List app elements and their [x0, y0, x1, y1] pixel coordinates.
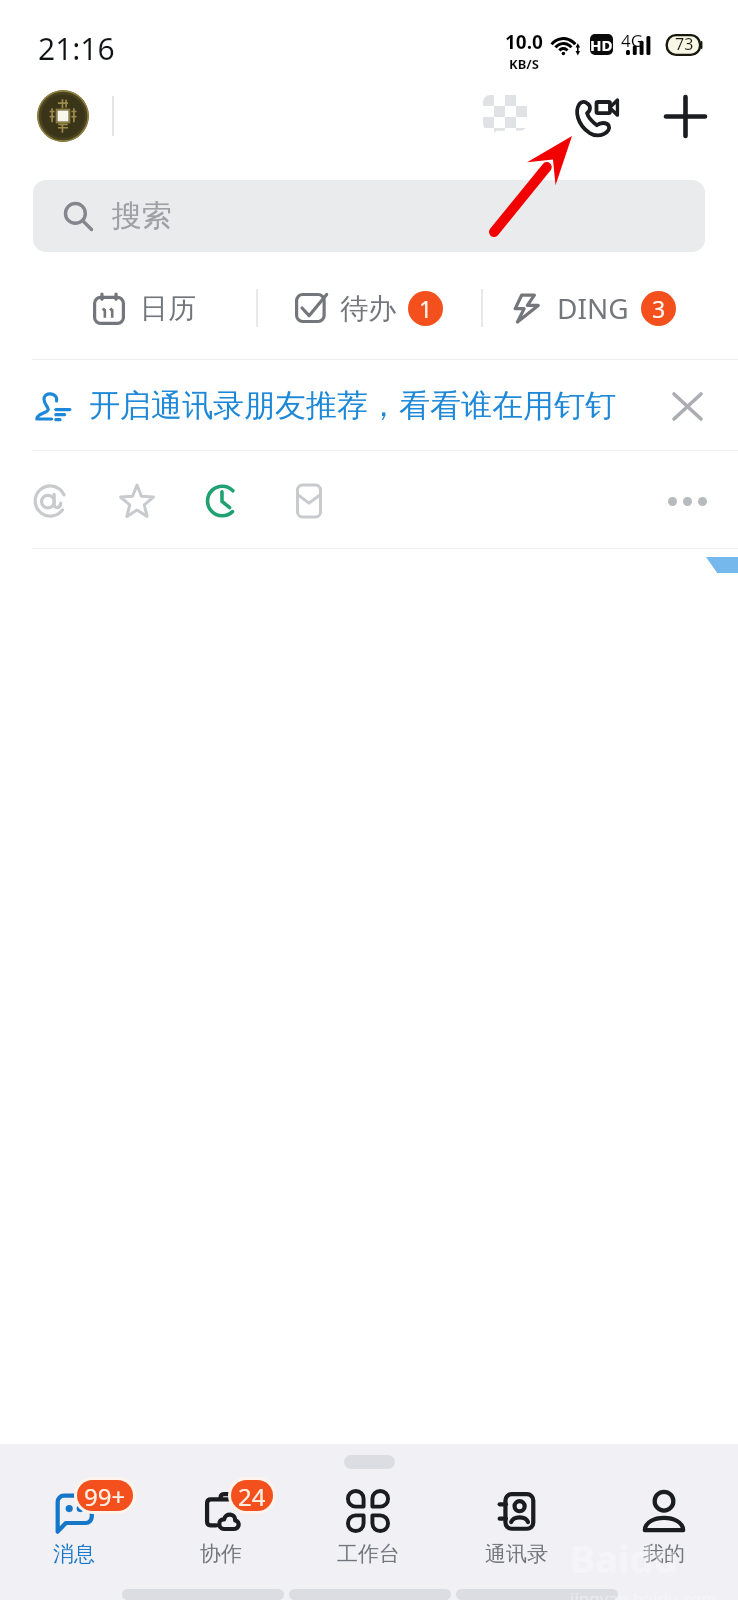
button[interactable]: 日历 — [32, 262, 256, 354]
staticText: 24 — [238, 1480, 266, 1511]
button[interactable]: 待办 — [258, 262, 480, 354]
staticText: 开启通讯录朋友推荐，看看谁在用钉钉 — [89, 386, 616, 425]
button[interactable]: Profile — [37, 90, 89, 142]
staticText: 通讯录 — [485, 1541, 548, 1567]
button[interactable]: 搜索 — [33, 180, 705, 252]
staticText: 搜索 — [112, 197, 172, 235]
staticText: jingyan.baidu.com — [570, 1587, 718, 1600]
staticText: 21:16 — [38, 28, 115, 69]
button[interactable]: Close — [661, 380, 713, 432]
button[interactable]: DING — [483, 262, 705, 354]
button[interactable]: 工作台 — [294, 1487, 442, 1584]
button[interactable]: Call — [570, 90, 622, 142]
staticText: 待办 — [340, 291, 396, 326]
staticText: 消息 — [53, 1541, 95, 1567]
staticText: Baidu — [570, 1532, 679, 1584]
button[interactable]: 99+ — [0, 1487, 147, 1584]
staticText: 协作 — [200, 1541, 242, 1567]
staticText: 1 — [419, 293, 433, 324]
button[interactable]: Add — [659, 90, 711, 142]
staticText: DING — [557, 289, 629, 327]
staticText: KB/S — [509, 55, 539, 73]
staticText: 3 — [652, 293, 666, 324]
staticText: 99+ — [84, 1480, 126, 1511]
button[interactable]: 24 — [147, 1487, 294, 1584]
staticText: 4G — [621, 29, 644, 52]
button[interactable]: 我的 — [590, 1487, 738, 1584]
staticText: 我的 — [643, 1541, 685, 1567]
button[interactable]: Archive — [288, 480, 330, 522]
button[interactable]: More — [661, 475, 713, 527]
button[interactable]: 通讯录 — [442, 1487, 590, 1584]
button[interactable]: Recent — [202, 480, 244, 522]
staticText: 工作台 — [337, 1541, 400, 1567]
button[interactable]: Mentions — [30, 480, 72, 522]
staticText: HD — [590, 35, 613, 55]
button[interactable]: Messages — [481, 92, 529, 140]
staticText: 日历 — [140, 291, 196, 326]
staticText: 10.0 — [505, 29, 543, 55]
button[interactable]: Starred — [116, 480, 158, 522]
staticText: 73 — [675, 33, 694, 55]
